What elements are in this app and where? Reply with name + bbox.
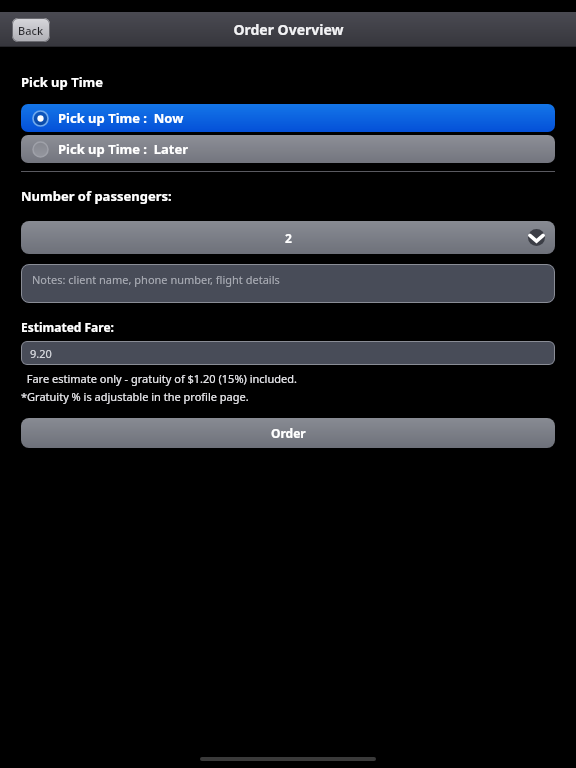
staticText: Notes: client name, phone number, flight…: [32, 272, 280, 287]
staticText: Pick up Time : Later: [58, 140, 189, 158]
staticText: Estimated Fare:: [21, 319, 114, 335]
button[interactable]: Notes: client name, phone number, flight…: [21, 264, 555, 303]
staticText: Order Overview: [233, 20, 344, 39]
staticText: Fare estimate only - gratuity of $1.20 (…: [21, 371, 297, 386]
staticText: Order: [271, 425, 306, 441]
staticText: Pick up Time : Now: [58, 109, 184, 127]
staticText: Number of passengers:: [21, 187, 172, 205]
staticText: Back: [18, 23, 44, 38]
button[interactable]: Back: [12, 18, 50, 42]
button[interactable]: Pick up Time : Now: [21, 104, 555, 132]
button[interactable]: 2: [21, 221, 555, 254]
staticText: *Gratuity % is adjustable in the profile…: [21, 389, 249, 404]
button[interactable]: Order: [21, 418, 555, 448]
button[interactable]: Pick up Time : Later: [21, 135, 555, 163]
staticText: Pick up Time: [21, 73, 103, 91]
other: Open passenger count: [528, 229, 545, 246]
staticText: 9.20: [30, 346, 52, 361]
staticText: 2: [285, 230, 292, 246]
button[interactable]: 9.20: [21, 341, 555, 365]
